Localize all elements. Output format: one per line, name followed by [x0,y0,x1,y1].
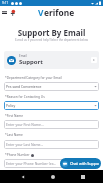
staticText: *Department/Category for your Email [5,76,62,80]
button[interactable]: Policy [4,101,99,110]
staticText: Support [19,58,43,66]
button[interactable]: Expand [91,57,97,63]
button[interactable]: Menu [0,8,9,17]
staticText: E-mail us if you need help! Select the d… [0,38,103,42]
button[interactable]: Chat with Support [60,158,101,169]
button[interactable]: Home [46,170,59,183]
staticText: Enter your Phone Number (ex... [6,161,57,166]
staticText: Email [19,54,27,58]
button[interactable]: Enter your First Name... [4,120,99,129]
button[interactable]: Recents [76,170,89,183]
button[interactable]: Back [16,170,29,183]
staticText: erifone [44,7,75,18]
staticText: *Reason for Contacting Us [5,95,45,99]
staticText: 9:11 [2,1,9,5]
staticText: *Phone Number [5,153,30,157]
staticText: Support By Email [0,27,103,38]
staticText: Pre-sand Convenience [6,84,42,89]
staticText: Enter your First Name... [6,122,44,127]
staticText: Chat with Support [70,161,99,166]
button[interactable]: Notifications [9,8,16,17]
staticText: Policy [6,103,16,108]
staticText: *First Name [5,114,24,118]
button[interactable]: Pre-sand Convenience [4,82,99,91]
staticText: V [38,7,44,18]
button[interactable]: Enter your Phone Number (ex... [4,159,99,168]
button[interactable]: Enter your Last Name... [4,140,99,149]
staticText: *Last Name [5,133,23,137]
button[interactable]: Email [4,51,99,69]
staticText: Enter your Last Name... [6,142,44,147]
